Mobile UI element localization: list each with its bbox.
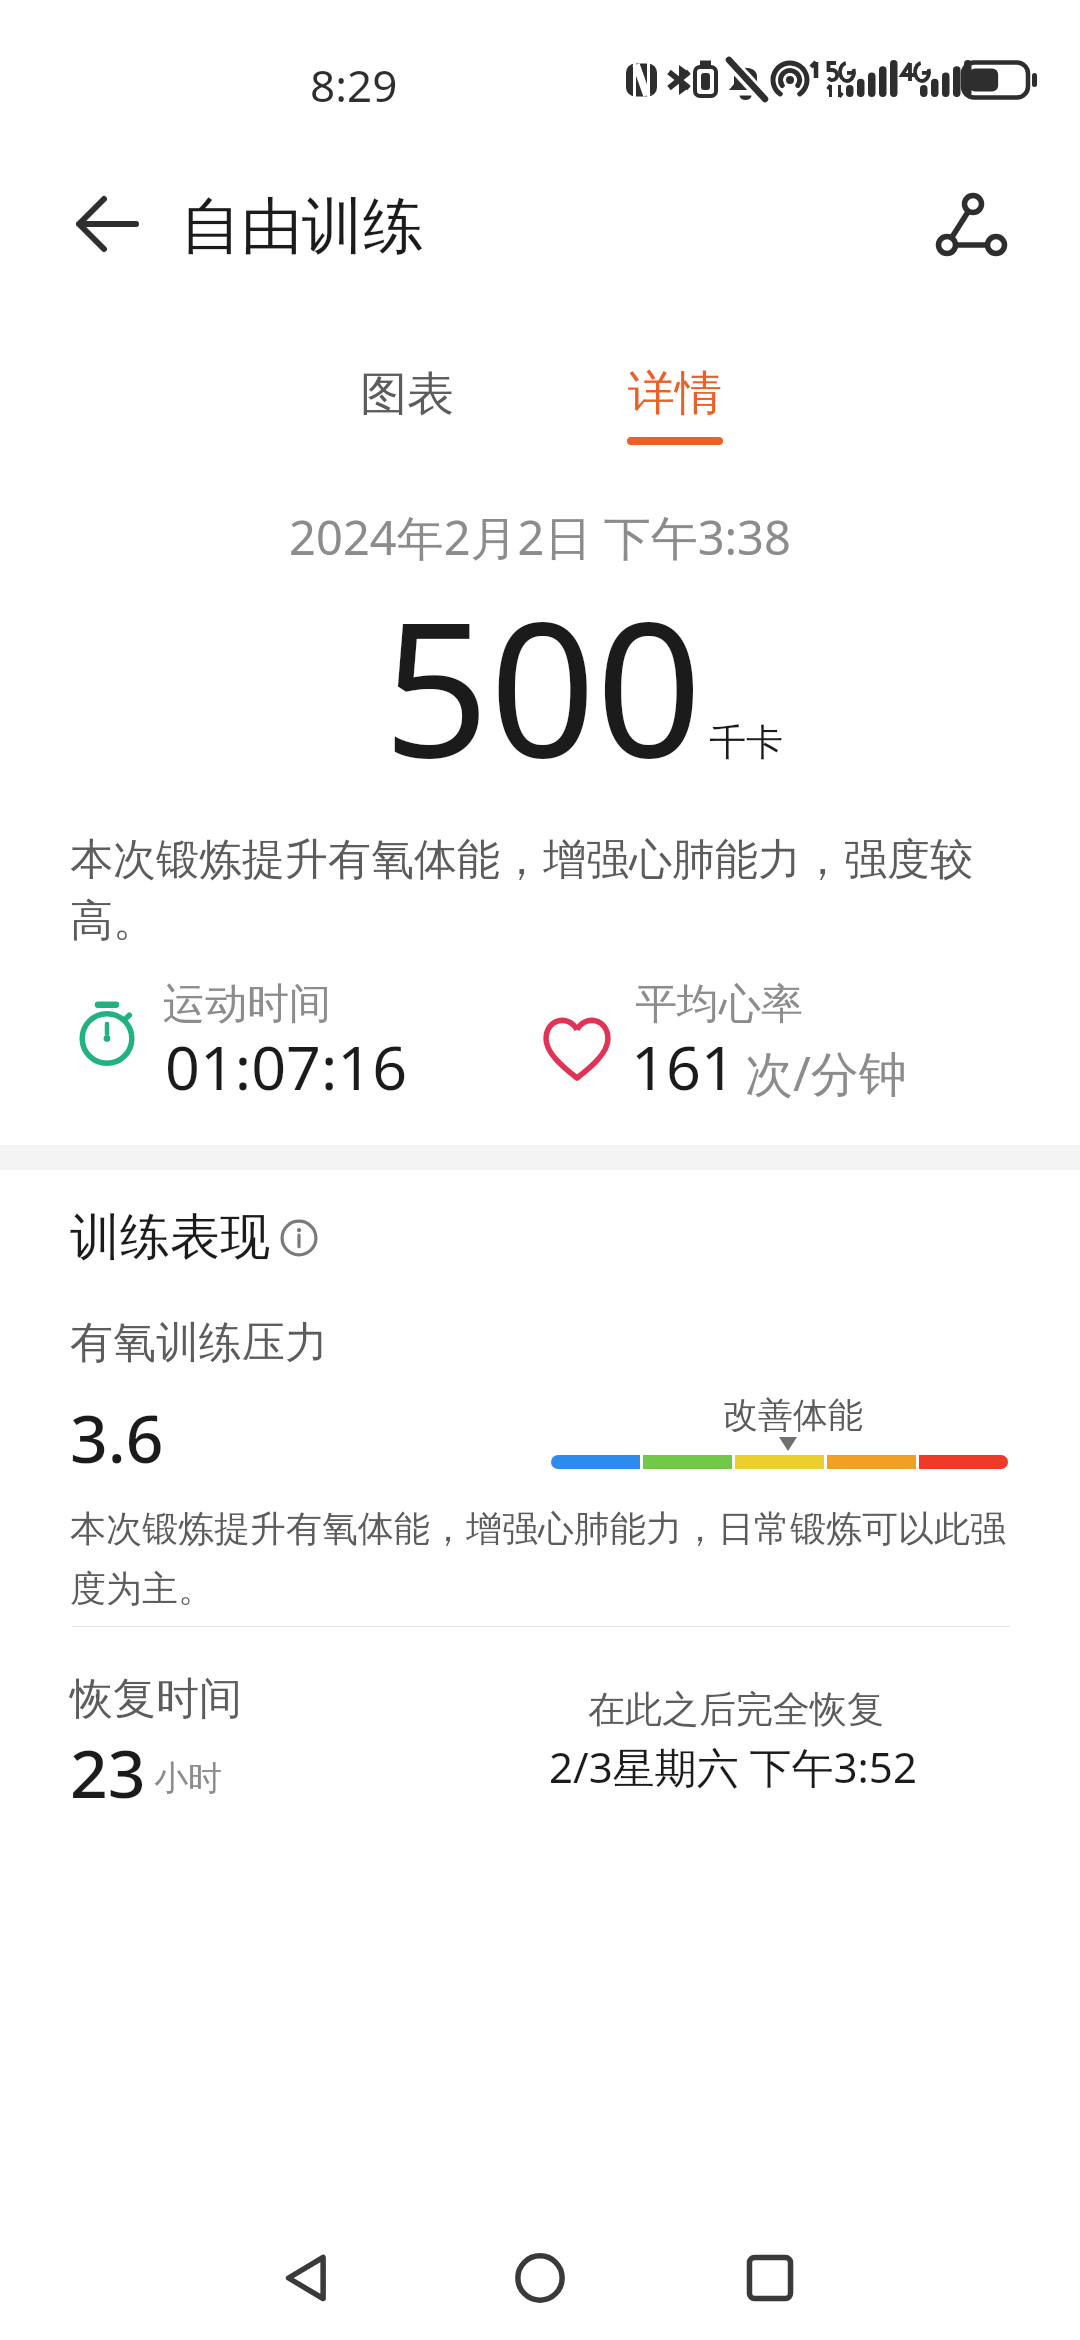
staticText: 01:07:16 bbox=[165, 1025, 408, 1108]
staticText: 平均心率 bbox=[635, 978, 803, 1031]
button[interactable]: Back bbox=[48, 180, 138, 270]
staticText: 有氧训练压力 bbox=[70, 1316, 328, 1370]
staticText: 详情 bbox=[628, 364, 722, 423]
button[interactable]: 详情 bbox=[535, 340, 815, 460]
button[interactable]: Recent apps bbox=[710, 2218, 830, 2338]
staticText: 训练表现 bbox=[70, 1206, 270, 1269]
button[interactable]: Home bbox=[480, 2218, 600, 2338]
staticText: 改善体能 bbox=[723, 1393, 863, 1437]
staticText: 自由训练 bbox=[180, 188, 424, 265]
staticText: 运动时间 bbox=[163, 978, 331, 1031]
staticText: 500 bbox=[383, 558, 703, 811]
staticText: 161 bbox=[631, 1025, 736, 1108]
button[interactable]: 图表 bbox=[267, 340, 547, 460]
staticText: 2/3星期六 下午3:52 bbox=[549, 1738, 917, 1795]
staticText: 本次锻炼提升有氧体能，增强心肺能力，日常锻炼可以此强度为主。 bbox=[70, 1506, 1015, 1611]
button[interactable]: Back bbox=[248, 2218, 368, 2338]
staticText: 千卡 bbox=[709, 719, 783, 766]
button[interactable]: Share bbox=[930, 180, 1020, 270]
staticText: 恢复时间 bbox=[70, 1672, 242, 1726]
staticText: 23 bbox=[70, 1727, 146, 1817]
staticText: 小时 bbox=[154, 1757, 222, 1800]
staticText: 3.6 bbox=[70, 1392, 164, 1482]
staticText: 本次锻炼提升有氧体能，增强心肺能力，强度较高。 bbox=[70, 833, 1010, 948]
staticText: 图表 bbox=[360, 365, 454, 424]
staticText: 在此之后完全恢复 bbox=[588, 1686, 884, 1733]
staticText: 次/分钟 bbox=[745, 1040, 907, 1106]
staticText: 8:29 bbox=[310, 55, 398, 115]
staticText: 2024年2月2日 下午3:38 bbox=[0, 505, 1080, 569]
